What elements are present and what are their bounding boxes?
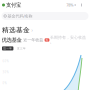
staticText: 近三年 bbox=[17, 47, 26, 50]
staticText: 近一年收益 bbox=[23, 37, 43, 42]
staticText: 热 bbox=[45, 38, 48, 42]
staticText: 精选基金 bbox=[2, 26, 30, 34]
button[interactable]: 优选基金 bbox=[0, 36, 90, 44]
staticText: 78% bbox=[66, 2, 73, 8]
button[interactable]: 基金代码/名称 bbox=[1, 12, 88, 20]
staticText: 60% bbox=[3, 59, 9, 63]
staticText: 近一年 bbox=[3, 47, 12, 50]
staticText: 支付宝 bbox=[6, 2, 21, 8]
staticText: 优选基金 bbox=[2, 37, 22, 43]
button[interactable]: 近三年 bbox=[17, 47, 26, 50]
staticText: 长期持有，安心收益 › bbox=[50, 35, 86, 45]
staticText: 30% bbox=[3, 70, 9, 74]
staticText: 0% bbox=[3, 81, 7, 85]
staticText: › bbox=[31, 26, 33, 34]
staticText: 基金代码/名称 bbox=[8, 13, 33, 19]
button[interactable]: 近一年 bbox=[2, 46, 13, 50]
button[interactable]: 精选基金 bbox=[0, 26, 90, 34]
